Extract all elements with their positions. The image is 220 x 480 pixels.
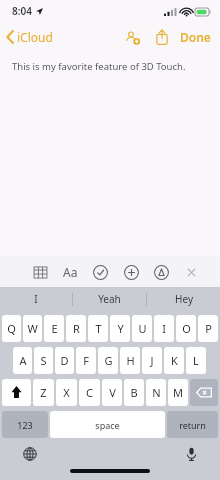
staticText: U [138,321,147,336]
staticText: 8:04 [12,4,32,18]
staticText: G [104,353,113,368]
staticText: iCloud [17,29,53,45]
button[interactable]: 123 [2,411,48,438]
staticText: This is my favorite feature of 3D Touch. [12,60,186,73]
staticText: K [171,353,178,368]
button[interactable]: Hey [147,287,220,311]
staticText: N [152,385,161,400]
staticText: Q [7,321,16,336]
button[interactable]: iCloud [0,25,61,49]
button[interactable]: Dictate [183,444,200,464]
staticText: Z [40,385,47,400]
staticText: J [150,353,154,368]
staticText: P [205,321,212,336]
button[interactable]: G [98,347,118,374]
staticText: Done [180,29,211,45]
button[interactable]: V [102,379,122,406]
staticText: X [63,385,70,400]
button[interactable]: Shift [2,379,31,406]
button[interactable]: U [132,315,152,342]
staticText: O [182,321,191,336]
button[interactable]: L [186,347,206,374]
staticText: Y [117,321,124,336]
staticText: V [109,385,116,400]
button[interactable]: T [88,315,108,342]
button[interactable]: J [142,347,162,374]
button[interactable]: Text format [59,260,82,284]
staticText: T [95,321,102,336]
button[interactable]: Done [176,25,220,49]
button[interactable]: Z [33,379,54,406]
button[interactable]: I [0,287,72,311]
staticText: Hey [175,292,193,306]
button[interactable]: R [66,315,86,342]
staticText: 123 [17,419,33,431]
button[interactable]: N [146,379,166,406]
button[interactable]: Yeah [73,287,146,311]
staticText: C [86,385,93,400]
staticText: L [193,353,199,368]
button[interactable]: Share [150,25,174,49]
staticText: A [19,353,27,368]
button[interactable]: Y [110,315,130,342]
button[interactable]: C [79,379,100,406]
staticText: I [34,292,38,306]
button[interactable]: X [56,379,77,406]
button[interactable]: Add People [119,26,146,49]
button[interactable]: E [44,315,64,342]
button[interactable]: Backspace [190,379,218,406]
button[interactable]: return [167,411,218,438]
button[interactable]: I [154,315,174,342]
staticText: H [126,353,135,368]
button[interactable]: Close keyboard [180,261,203,284]
staticText: return [179,419,206,431]
button[interactable]: D [55,347,74,374]
staticText: Aa [63,264,78,280]
staticText: space [95,419,120,431]
staticText: W [27,321,38,336]
staticText: E [51,321,58,336]
button[interactable]: Table [29,261,52,284]
button[interactable]: Markup [150,261,173,284]
button[interactable]: Checklist [89,261,112,284]
button[interactable]: space [50,411,165,438]
button[interactable]: W [23,315,42,342]
button[interactable]: A [13,347,32,374]
button[interactable]: B [124,379,144,406]
button[interactable]: F [76,347,96,374]
button[interactable]: Add attachment [120,261,143,284]
staticText: F [83,353,89,368]
staticText: D [60,353,69,368]
staticText: M [173,385,183,400]
button[interactable]: P [198,315,218,342]
button[interactable]: S [34,347,53,374]
staticText: B [130,385,138,400]
staticText: I [162,321,166,336]
staticText: R [73,321,80,336]
staticText: Yeah [98,292,121,306]
button[interactable]: Change keyboard [20,444,40,464]
button[interactable]: O [176,315,196,342]
button[interactable]: Q [2,315,21,342]
button[interactable]: H [120,347,140,374]
staticText: S [40,353,47,368]
button[interactable]: M [168,379,188,406]
button[interactable]: K [164,347,184,374]
